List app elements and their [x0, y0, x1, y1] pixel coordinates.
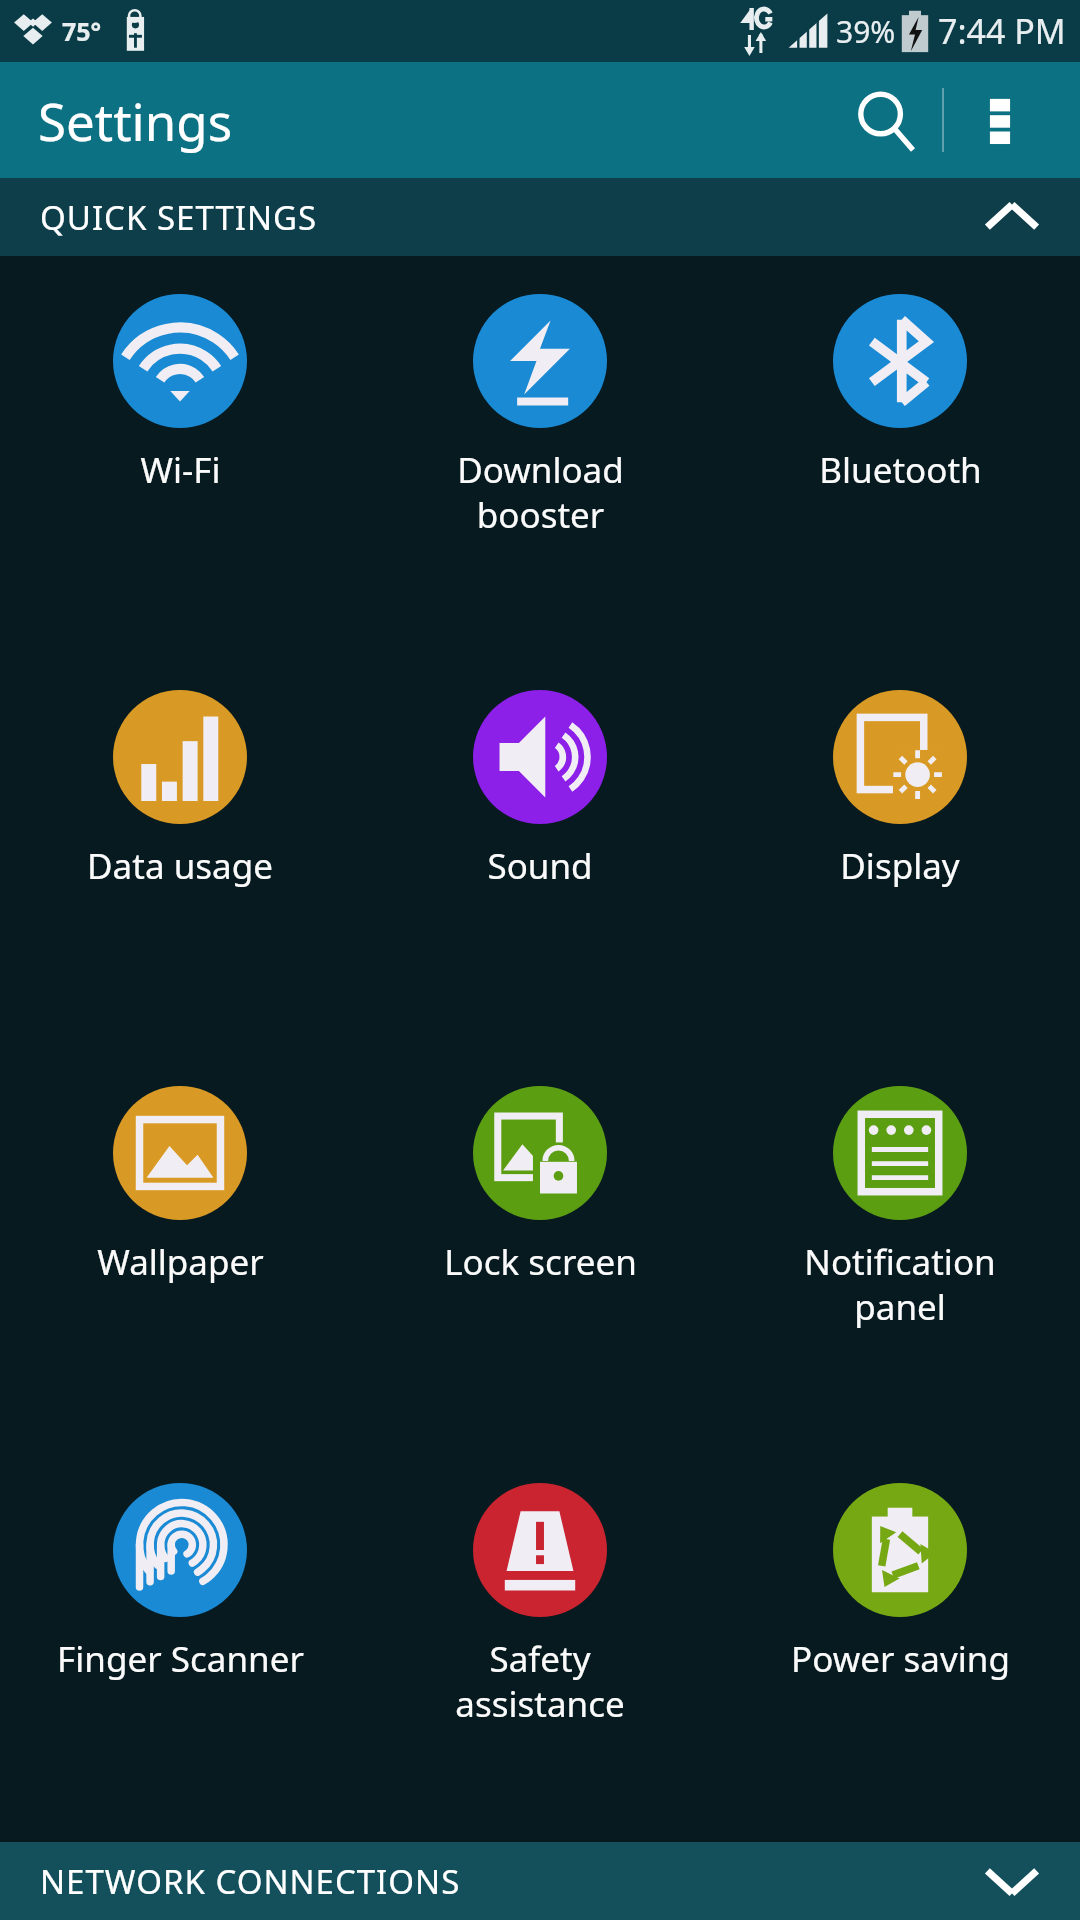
button[interactable]: Safety assistance — [360, 1445, 720, 1842]
button[interactable]: Bluetooth — [720, 256, 1080, 652]
button[interactable]: Lock screen — [360, 1048, 720, 1445]
button[interactable]: Power saving — [720, 1445, 1080, 1842]
staticText: 39% — [836, 11, 896, 52]
staticText: Power saving — [791, 1635, 1010, 1683]
staticText: NETWORK CONNECTIONS — [40, 1859, 461, 1904]
staticText: Download booster — [457, 446, 624, 538]
staticText: 7:44 PM — [938, 8, 1066, 54]
button[interactable]: NETWORK CONNECTIONS — [0, 1842, 1080, 1920]
button[interactable]: Finger Scanner — [0, 1445, 360, 1842]
staticText: Wi-Fi — [140, 446, 221, 494]
button[interactable]: Wi-Fi — [0, 256, 360, 652]
staticText: Settings — [38, 86, 233, 155]
button[interactable]: Sound — [360, 652, 720, 1048]
button[interactable]: Display — [720, 652, 1080, 1048]
staticText: Wallpaper — [97, 1238, 264, 1286]
staticText: Safety assistance — [455, 1635, 625, 1727]
staticText: Finger Scanner — [57, 1635, 304, 1683]
button[interactable]: Data usage — [0, 652, 360, 1048]
staticText: Display — [840, 842, 960, 890]
staticText: Notification panel — [804, 1238, 996, 1330]
button[interactable]: Search — [830, 64, 942, 176]
staticText: Lock screen — [444, 1238, 637, 1286]
button[interactable]: Download booster — [360, 256, 720, 652]
staticText: Data usage — [87, 842, 273, 890]
staticText: Bluetooth — [819, 446, 982, 494]
button[interactable]: More options — [944, 64, 1056, 176]
staticText: Sound — [487, 842, 593, 890]
button[interactable]: Notification panel — [720, 1048, 1080, 1445]
staticText: 75° — [62, 14, 102, 48]
button[interactable]: QUICK SETTINGS — [0, 178, 1080, 256]
staticText: QUICK SETTINGS — [40, 195, 318, 240]
button[interactable]: Wallpaper — [0, 1048, 360, 1445]
